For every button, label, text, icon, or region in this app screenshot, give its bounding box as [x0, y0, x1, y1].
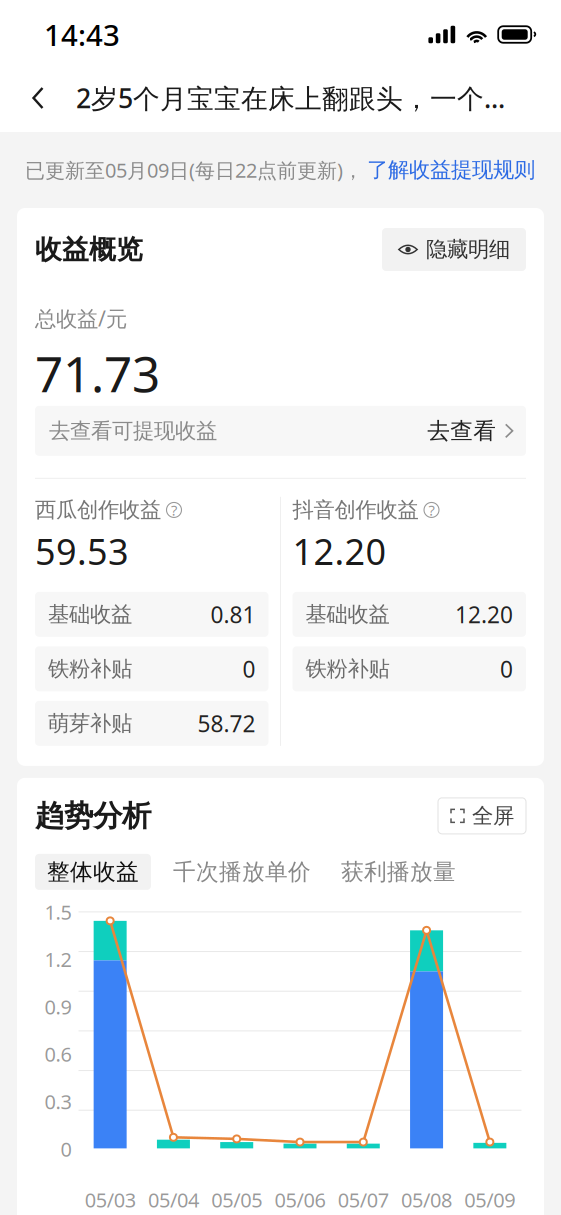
staticText: 整体收益 [47, 858, 139, 886]
staticText: 12.20 [455, 599, 513, 629]
staticText: 全屏 [472, 803, 514, 829]
button[interactable]: 隐藏明细 [382, 228, 526, 271]
staticText: 千次播放单价 [173, 858, 311, 886]
staticText: 0.81 [210, 599, 255, 629]
button[interactable]: Back [14, 72, 62, 124]
staticText: 基础收益 [305, 601, 389, 627]
staticText: 12.20 [292, 527, 386, 575]
staticText: 1.5 [44, 899, 71, 925]
staticText: 0.6 [44, 1041, 71, 1067]
button[interactable]: 全屏 [438, 798, 526, 834]
staticText: 05/03 [85, 1187, 136, 1213]
staticText: 59.53 [35, 527, 129, 575]
staticText: 05/05 [211, 1187, 262, 1213]
staticText: ? [171, 500, 177, 520]
staticText: 基础收益 [48, 601, 132, 627]
staticText: 已更新至05月09日(每日22点前更新)， [25, 157, 363, 183]
button[interactable]: 整体收益 [35, 854, 151, 890]
staticText: 获利播放量 [341, 858, 456, 886]
staticText: 71.73 [35, 340, 160, 406]
staticText: 收益概览 [35, 233, 143, 266]
staticText: 05/04 [148, 1187, 199, 1213]
staticText: 0 [500, 654, 513, 684]
staticText: 1.2 [44, 946, 71, 973]
button[interactable]: 千次播放单价 [161, 854, 323, 890]
button[interactable]: 了解收益提现规则 [363, 151, 535, 189]
staticText: 西瓜创作收益 [35, 497, 161, 523]
staticText: 58.72 [197, 708, 255, 738]
staticText: 去查看可提现收益 [49, 418, 217, 444]
staticText: 0 [60, 1136, 71, 1162]
staticText: 萌芽补贴 [48, 710, 132, 736]
staticText: ? [428, 500, 434, 520]
staticText: 05/06 [274, 1187, 325, 1213]
staticText: 铁粉补贴 [48, 656, 132, 682]
staticText: 了解收益提现规则 [367, 157, 535, 183]
staticText: 0 [242, 654, 255, 684]
staticText: 抖音创作收益 [292, 497, 418, 523]
staticText: 隐藏明细 [426, 236, 510, 263]
button[interactable]: 去查看可提现收益 [35, 406, 526, 456]
staticText: 铁粉补贴 [305, 656, 389, 682]
staticText: 05/09 [464, 1187, 515, 1213]
staticText: 0.9 [44, 993, 71, 1020]
staticText: 14:43 [44, 15, 120, 54]
staticText: 05/08 [401, 1187, 452, 1213]
staticText: 0.3 [44, 1088, 71, 1115]
staticText: 2岁5个月宝宝在床上翻跟头，一个... [76, 80, 505, 116]
staticText: 总收益/元 [35, 304, 127, 332]
staticText: 05/07 [338, 1187, 389, 1213]
button[interactable]: 获利播放量 [329, 854, 468, 890]
staticText: 去查看 [427, 417, 496, 445]
staticText: 趋势分析 [35, 798, 151, 834]
